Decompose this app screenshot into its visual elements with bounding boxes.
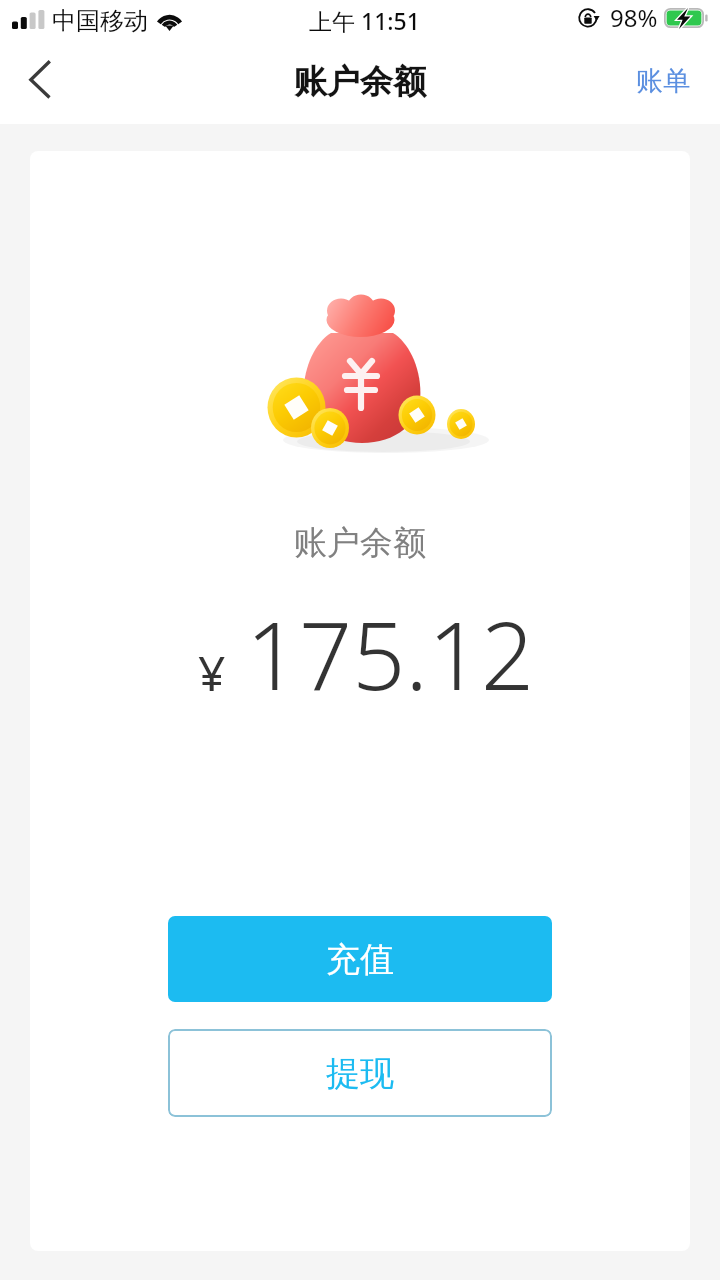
staticText: 账户余额 — [294, 522, 426, 564]
staticText: 98% — [610, 1, 658, 34]
staticText: 账单 — [636, 64, 690, 98]
staticText: ¥ — [198, 640, 226, 705]
button[interactable]: Back — [4, 50, 76, 124]
staticText: 提现 — [326, 1052, 394, 1095]
staticText: 上午 11:51 — [309, 5, 420, 36]
button[interactable]: 账单 — [610, 50, 720, 124]
button[interactable]: 提现 — [168, 1029, 552, 1117]
staticText: 账户余额 — [294, 61, 426, 103]
staticText: 充值 — [326, 938, 394, 981]
staticText: 中国移动 — [52, 6, 148, 36]
staticText: 175.12 — [246, 591, 535, 718]
button[interactable]: 充值 — [168, 916, 552, 1002]
